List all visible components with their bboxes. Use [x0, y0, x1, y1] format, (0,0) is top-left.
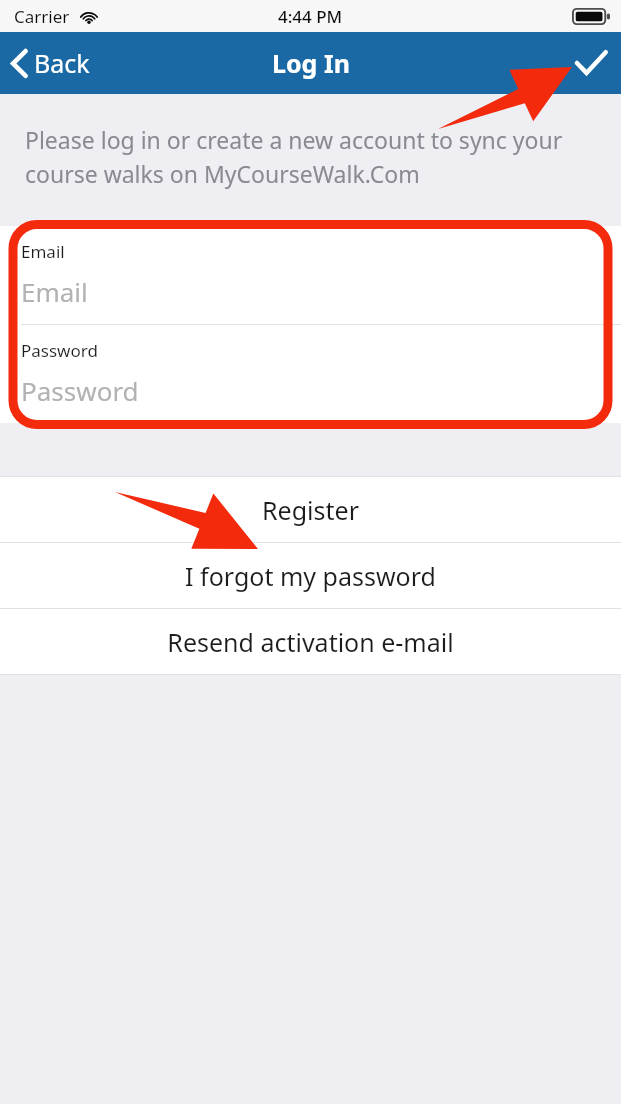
staticText: 4:44 PM	[278, 5, 343, 28]
staticText: Back	[34, 46, 90, 80]
button[interactable]: Register	[0, 477, 621, 542]
staticText: Log In	[272, 46, 350, 80]
button[interactable]: I forgot my password	[0, 543, 621, 608]
staticText: Password	[21, 339, 98, 362]
button[interactable]: Password	[0, 325, 621, 423]
staticText: I forgot my password	[185, 559, 436, 593]
staticText: Password	[21, 373, 139, 408]
button[interactable]: Email	[0, 226, 621, 324]
staticText: Carrier	[14, 5, 70, 28]
staticText: Email	[21, 240, 65, 263]
staticText: Register	[262, 493, 359, 527]
staticText: Please log in or create a new account to…	[25, 124, 581, 189]
button[interactable]: Back	[0, 32, 104, 94]
button[interactable]: Done	[561, 32, 621, 94]
staticText: Email	[21, 274, 88, 309]
staticText: Resend activation e-mail	[167, 625, 454, 659]
button[interactable]: Resend activation e-mail	[0, 609, 621, 674]
